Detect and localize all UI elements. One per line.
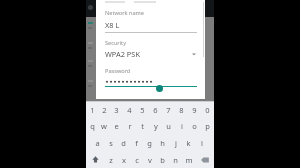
staticText: j (175, 138, 177, 148)
button[interactable]: e (110, 118, 123, 134)
staticText: Password (105, 67, 131, 75)
staticText: 6 (153, 105, 158, 115)
staticText: 1 (90, 105, 95, 115)
button[interactable]: 0 (201, 102, 214, 118)
button[interactable]: r (123, 118, 136, 134)
staticText: CANCEL (145, 89, 168, 91)
button[interactable]: 8 (175, 102, 188, 118)
staticText: 3 (114, 105, 119, 115)
staticText: x (122, 155, 126, 165)
button[interactable]: 4 (123, 102, 136, 118)
staticText: b (160, 155, 165, 165)
staticText: 0 (205, 105, 210, 115)
staticText: w (101, 121, 107, 131)
staticText: a (95, 138, 100, 148)
staticText: k (186, 138, 191, 148)
button[interactable]: s (104, 134, 117, 151)
button[interactable]: 3 (110, 102, 123, 118)
staticText: y (154, 121, 158, 131)
button[interactable]: u (162, 118, 175, 134)
button[interactable]: j (169, 134, 182, 151)
button[interactable]: f (130, 134, 143, 151)
button[interactable]: CANCEL (143, 87, 170, 93)
staticText: c (135, 155, 139, 165)
staticText: v (148, 155, 152, 165)
button[interactable]: k (182, 134, 195, 151)
button[interactable]: WPA2 PSK (105, 49, 197, 59)
staticText: r (128, 121, 132, 131)
button[interactable]: m (182, 151, 195, 168)
staticText: X8 L (105, 20, 120, 30)
staticText: d (121, 138, 126, 148)
button[interactable] (105, 79, 197, 87)
button[interactable]: g (143, 134, 156, 151)
staticText: u (166, 121, 171, 131)
button[interactable]: z (104, 151, 117, 168)
button[interactable]: Backspace (195, 151, 214, 168)
other: Security dropdown (191, 51, 197, 57)
staticText: s (109, 138, 113, 148)
staticText: f (135, 138, 138, 148)
button[interactable]: q (86, 118, 98, 134)
staticText: 5 (140, 105, 145, 115)
staticText: m (185, 155, 193, 165)
button[interactable]: 2 (98, 102, 110, 118)
staticText: o (192, 121, 197, 131)
staticText: q (90, 121, 95, 131)
staticText: 2 (102, 105, 107, 115)
staticText: t (141, 121, 144, 131)
staticText: Security (105, 39, 126, 47)
staticText: z (109, 155, 113, 165)
button[interactable]: i (175, 118, 188, 134)
button[interactable]: a (91, 134, 104, 151)
button[interactable]: v (143, 151, 156, 168)
staticText: Network name (105, 9, 144, 17)
button[interactable]: b (156, 151, 169, 168)
button[interactable]: x (117, 151, 130, 168)
staticText: p (205, 121, 210, 131)
staticText: 4 (127, 105, 132, 115)
button[interactable]: y (149, 118, 162, 134)
button[interactable]: t (136, 118, 149, 134)
button[interactable]: d (117, 134, 130, 151)
staticText: 9 (192, 105, 197, 115)
staticText: 7 (166, 105, 171, 115)
button[interactable]: l (195, 134, 208, 151)
button[interactable]: 5 (136, 102, 149, 118)
button[interactable]: n (169, 151, 182, 168)
button[interactable]: Shift (86, 151, 104, 168)
staticText: n (173, 155, 178, 165)
button[interactable]: c (130, 151, 143, 168)
button[interactable]: h (156, 134, 169, 151)
button[interactable]: 7 (162, 102, 175, 118)
button[interactable]: o (188, 118, 201, 134)
staticText: WPA2 PSK (105, 49, 140, 59)
button[interactable]: 9 (188, 102, 201, 118)
staticText: l (201, 138, 203, 148)
staticText: e (114, 121, 119, 131)
staticText: 8 (179, 105, 184, 115)
button[interactable]: X8 L (105, 20, 197, 33)
staticText: g (147, 138, 152, 148)
staticText: h (160, 138, 165, 148)
staticText: i (181, 121, 183, 131)
button[interactable]: 1 (86, 102, 98, 118)
button[interactable]: 6 (149, 102, 162, 118)
button[interactable]: p (201, 118, 214, 134)
button[interactable]: w (98, 118, 110, 134)
